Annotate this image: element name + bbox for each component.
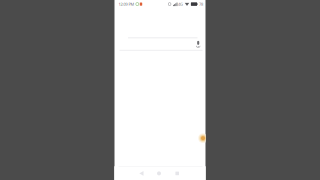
button[interactable]: Compose	[198, 133, 208, 143]
staticText: 78	[199, 1, 203, 7]
button[interactable]: Home	[152, 167, 165, 180]
staticText: 12:09 PM	[118, 1, 134, 7]
button[interactable]: Back	[135, 167, 148, 180]
staticText: 4G	[178, 1, 183, 7]
button[interactable]: Recent apps	[171, 167, 184, 180]
button[interactable]: Search by voice	[114, 37, 205, 51]
